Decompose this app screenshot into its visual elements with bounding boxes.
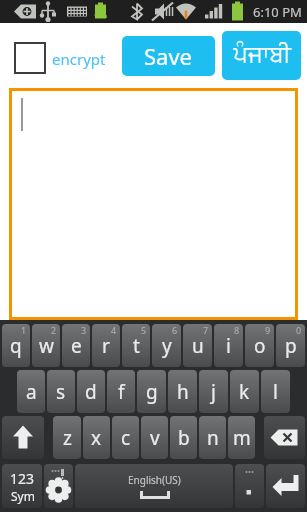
button[interactable] bbox=[9, 88, 298, 320]
staticText: f bbox=[118, 379, 125, 405]
staticText: k bbox=[239, 379, 250, 405]
staticText: d bbox=[85, 379, 97, 405]
button[interactable]: k bbox=[230, 370, 259, 413]
button[interactable]: Settings bbox=[44, 464, 73, 508]
staticText: 123 bbox=[10, 469, 35, 488]
button[interactable]: e bbox=[62, 324, 90, 367]
button[interactable]: l bbox=[261, 370, 290, 413]
button[interactable]: d bbox=[77, 370, 105, 413]
staticText: y bbox=[162, 333, 172, 359]
staticText: 4 bbox=[111, 324, 117, 336]
button[interactable]: Enter bbox=[266, 464, 305, 508]
staticText: 6:10 PM bbox=[253, 3, 302, 21]
staticText: l bbox=[273, 379, 278, 405]
staticText: u bbox=[192, 333, 204, 359]
staticText: 2 bbox=[51, 324, 57, 336]
button[interactable]: h bbox=[168, 370, 197, 413]
button[interactable]: Save bbox=[122, 36, 215, 76]
button[interactable]: 123 Symbols bbox=[2, 464, 42, 508]
button[interactable]: m bbox=[228, 416, 255, 459]
staticText: 6 bbox=[172, 324, 178, 336]
staticText: t bbox=[133, 333, 140, 359]
staticText: 8 bbox=[234, 324, 240, 336]
staticText: i bbox=[226, 333, 231, 359]
staticText: c bbox=[121, 425, 131, 451]
staticText: q bbox=[10, 333, 22, 359]
button[interactable]: ਪੰਜਾਬੀ bbox=[222, 31, 301, 80]
staticText: g bbox=[146, 379, 158, 405]
staticText: 5 bbox=[141, 324, 147, 336]
button[interactable]: z bbox=[53, 416, 81, 459]
button[interactable]: encrypt bbox=[52, 49, 106, 69]
staticText: Sym bbox=[11, 488, 35, 504]
button[interactable]: q bbox=[2, 324, 30, 367]
staticText: j bbox=[211, 379, 216, 405]
button[interactable]: c bbox=[112, 416, 139, 459]
button[interactable]: encrypt checkbox bbox=[14, 42, 46, 74]
button[interactable]: x bbox=[83, 416, 110, 459]
button[interactable]: i bbox=[214, 324, 243, 367]
staticText: n bbox=[207, 425, 219, 451]
button[interactable]: Space, English US bbox=[75, 464, 233, 508]
staticText: a bbox=[26, 379, 37, 405]
staticText: e bbox=[71, 333, 82, 359]
button[interactable]: v bbox=[141, 416, 168, 459]
staticText: p bbox=[285, 333, 297, 359]
button[interactable]: s bbox=[47, 370, 75, 413]
staticText: w bbox=[39, 333, 54, 359]
button[interactable]: n bbox=[199, 416, 226, 459]
staticText: 9 bbox=[265, 324, 271, 336]
staticText: 1 bbox=[21, 324, 27, 336]
staticText: ਪੰਜਾਬੀ bbox=[233, 44, 291, 67]
staticText: 3 bbox=[81, 324, 87, 336]
button[interactable]: y bbox=[152, 324, 181, 367]
button[interactable]: t bbox=[122, 324, 150, 367]
staticText: 100% bbox=[94, 13, 108, 20]
staticText: English(US) bbox=[128, 473, 181, 487]
button[interactable]: f bbox=[107, 370, 135, 413]
staticText: 0 bbox=[296, 324, 302, 336]
button[interactable]: w bbox=[32, 324, 60, 367]
staticText: o bbox=[254, 333, 266, 359]
button[interactable]: p bbox=[276, 324, 305, 367]
button[interactable]: b bbox=[170, 416, 197, 459]
staticText: b bbox=[178, 425, 190, 451]
staticText: m bbox=[233, 425, 251, 451]
button[interactable]: Period bbox=[235, 464, 264, 508]
button[interactable]: u bbox=[183, 324, 212, 367]
button[interactable]: j bbox=[199, 370, 228, 413]
staticText: Save bbox=[144, 41, 193, 71]
staticText: 7 bbox=[203, 324, 209, 336]
button[interactable]: a bbox=[17, 370, 45, 413]
button[interactable]: r bbox=[92, 324, 120, 367]
button[interactable]: Shift bbox=[2, 416, 44, 459]
staticText: s bbox=[56, 379, 66, 405]
button[interactable]: o bbox=[245, 324, 274, 367]
staticText: z bbox=[63, 425, 72, 451]
button[interactable]: Backspace bbox=[264, 416, 305, 459]
staticText: r bbox=[102, 333, 110, 359]
button[interactable]: g bbox=[137, 370, 166, 413]
staticText: v bbox=[150, 425, 160, 451]
staticText: x bbox=[91, 425, 102, 451]
staticText: h bbox=[177, 379, 189, 405]
